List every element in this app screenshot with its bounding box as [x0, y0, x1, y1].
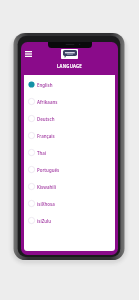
staticText: Français	[37, 133, 55, 139]
button[interactable]: Open navigation menu	[22, 48, 34, 60]
staticText: Afrikaans	[37, 99, 58, 105]
staticText: isiZulu	[37, 218, 52, 224]
button[interactable]: isiZulu	[24, 212, 115, 229]
staticText: Deutsch	[37, 116, 55, 122]
button[interactable]: Deutsch	[24, 110, 115, 127]
staticText: LANGUAGE	[57, 63, 82, 69]
button[interactable]: isiXhosa	[24, 195, 115, 212]
staticText: Portuguës	[37, 167, 60, 173]
staticText: English	[37, 82, 53, 88]
staticText: isiXhosa	[37, 201, 55, 207]
button[interactable]: Français	[24, 127, 115, 144]
staticText: Kiswahili	[37, 184, 56, 190]
button[interactable]: Thai	[24, 144, 115, 161]
button[interactable]: App logo	[61, 49, 78, 59]
button[interactable]: Kiswahili	[24, 178, 115, 195]
button[interactable]: Portuguës	[24, 161, 115, 178]
button[interactable]: Afrikaans	[24, 93, 115, 110]
staticText: Thai	[37, 150, 47, 156]
button[interactable]: English	[24, 76, 115, 93]
